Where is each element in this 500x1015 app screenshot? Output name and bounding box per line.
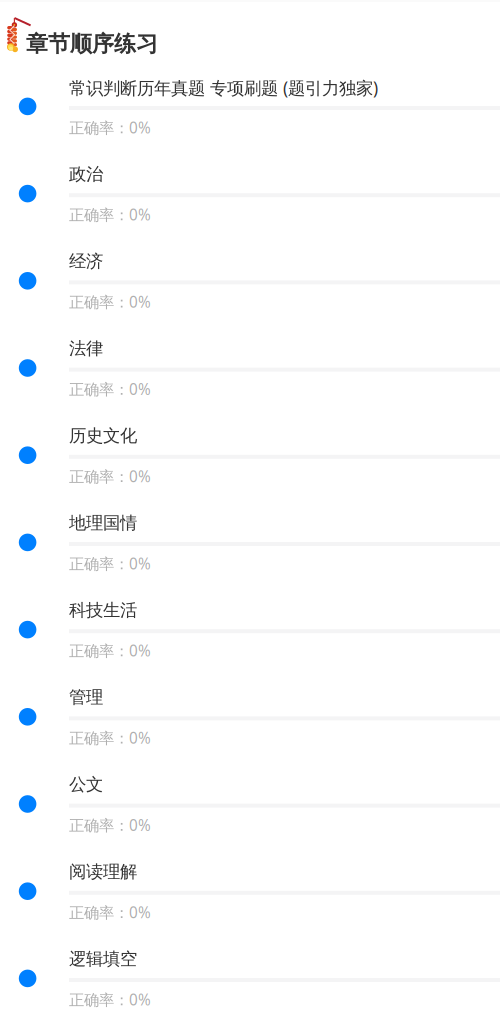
button[interactable]: 政治 bbox=[0, 150, 500, 237]
staticText: 历史文化 bbox=[69, 425, 137, 447]
staticText: 经济 bbox=[69, 250, 103, 272]
staticText: 正确率：0% bbox=[69, 553, 151, 574]
staticText: 正确率：0% bbox=[69, 989, 151, 1010]
button[interactable]: 法律 bbox=[0, 325, 500, 412]
staticText: 管理 bbox=[69, 686, 103, 708]
staticText: 阅读理解 bbox=[69, 861, 137, 883]
staticText: 正确率：0% bbox=[69, 902, 151, 923]
button[interactable]: 阅读理解 bbox=[0, 848, 500, 935]
button[interactable]: 管理 bbox=[0, 673, 500, 761]
button[interactable]: 公文 bbox=[0, 761, 500, 848]
staticText: 正确率：0% bbox=[69, 117, 151, 138]
staticText: 正确率：0% bbox=[69, 379, 151, 399]
staticText: 正确率：0% bbox=[69, 727, 151, 748]
staticText: 法律 bbox=[69, 338, 103, 359]
button[interactable]: 科技生活 bbox=[0, 586, 500, 673]
staticText: 政治 bbox=[69, 163, 103, 185]
button[interactable]: 历史文化 bbox=[0, 412, 500, 499]
staticText: 正确率：0% bbox=[69, 291, 151, 312]
button[interactable]: 常识判断历年真题 专项刷题 (题引力独家) bbox=[0, 63, 500, 150]
button[interactable]: 逻辑填空 bbox=[0, 935, 500, 1015]
staticText: 正确率：0% bbox=[69, 204, 151, 225]
staticText: 正确率：0% bbox=[69, 815, 151, 835]
staticText: 正确率：0% bbox=[69, 640, 151, 661]
staticText: 章节顺序练习 bbox=[26, 30, 158, 58]
button[interactable]: 经济 bbox=[0, 237, 500, 325]
staticText: 地理国情 bbox=[69, 512, 137, 534]
staticText: 正确率：0% bbox=[69, 466, 151, 487]
staticText: 公文 bbox=[69, 774, 103, 795]
staticText: 科技生活 bbox=[69, 599, 137, 621]
staticText: 逻辑填空 bbox=[69, 948, 137, 970]
button[interactable]: 地理国情 bbox=[0, 499, 500, 586]
staticText: 常识判断历年真题 专项刷题 (题引力独家) bbox=[69, 76, 378, 100]
